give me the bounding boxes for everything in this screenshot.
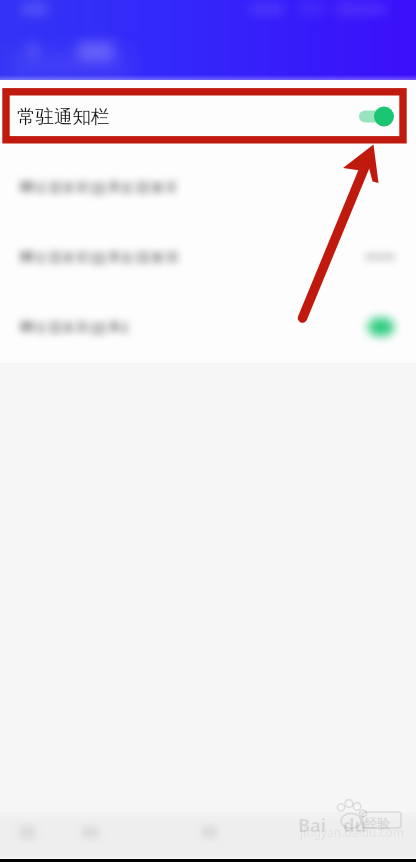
- button[interactable]: 常驻通知栏: [0, 80, 416, 152]
- staticText: Bai: [298, 813, 327, 838]
- staticText: jingyan.baidu.com: [300, 824, 404, 840]
- button[interactable]: [0, 222, 416, 292]
- button[interactable]: [0, 292, 416, 362]
- staticText: 常驻通知栏: [17, 105, 110, 128]
- button[interactable]: Toggle persistent notification bar: [359, 106, 394, 127]
- staticText: 经验: [364, 815, 390, 831]
- button[interactable]: [0, 152, 416, 222]
- staticText: du: [343, 813, 367, 838]
